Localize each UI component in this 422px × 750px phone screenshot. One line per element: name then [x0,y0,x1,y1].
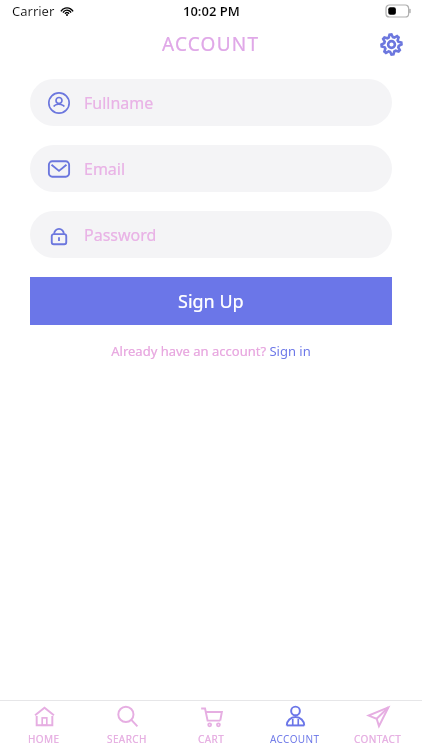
staticText: Sign Up [178,289,244,314]
button[interactable]: HOME [4,701,84,750]
button[interactable]: CONTACT [338,701,418,750]
button[interactable]: Password [30,211,392,258]
staticText: Password [84,224,157,246]
button[interactable]: SEARCH [87,701,167,750]
staticText: HOME [28,732,60,746]
button[interactable]: ACCOUNT [255,701,335,750]
button[interactable]: Already have an account? Sign in [103,338,319,364]
button[interactable]: Sign Up [30,277,392,325]
staticText: SEARCH [107,732,147,746]
button[interactable]: Settings [374,27,408,61]
staticText: ACCOUNT [162,31,260,57]
button[interactable]: Fullname [30,79,392,126]
button[interactable]: CART [171,701,251,750]
staticText: CART [198,732,225,746]
staticText: Fullname [84,92,154,114]
staticText: Email [84,158,126,180]
staticText: 10:02 PM [183,2,240,20]
staticText: CONTACT [354,732,402,746]
staticText: Carrier [12,2,55,20]
staticText: Already have an account? Sign in [111,342,311,360]
button[interactable]: Email [30,145,392,192]
staticText: ACCOUNT [270,732,320,746]
